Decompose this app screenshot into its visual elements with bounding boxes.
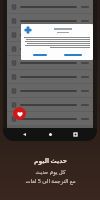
button[interactable] <box>33 52 47 57</box>
button[interactable] <box>11 42 89 55</box>
button[interactable] <box>11 70 89 83</box>
button[interactable] <box>11 28 89 41</box>
button[interactable] <box>11 0 89 13</box>
button[interactable] <box>11 98 89 111</box>
button[interactable] <box>11 14 89 27</box>
button[interactable]: Favourites <box>13 107 26 120</box>
staticText: كل يوم حديث <box>35 168 66 175</box>
button[interactable]: Recent apps <box>71 130 80 139</box>
button[interactable] <box>11 56 89 69</box>
staticText: حديث اليوم <box>34 157 67 165</box>
button[interactable] <box>64 52 82 57</box>
staticText: مع الترجمة الى 5 لغات <box>25 177 76 184</box>
button[interactable] <box>11 84 89 97</box>
button[interactable]: Back <box>20 130 29 139</box>
button[interactable] <box>11 112 89 125</box>
button[interactable]: Home <box>46 130 55 139</box>
